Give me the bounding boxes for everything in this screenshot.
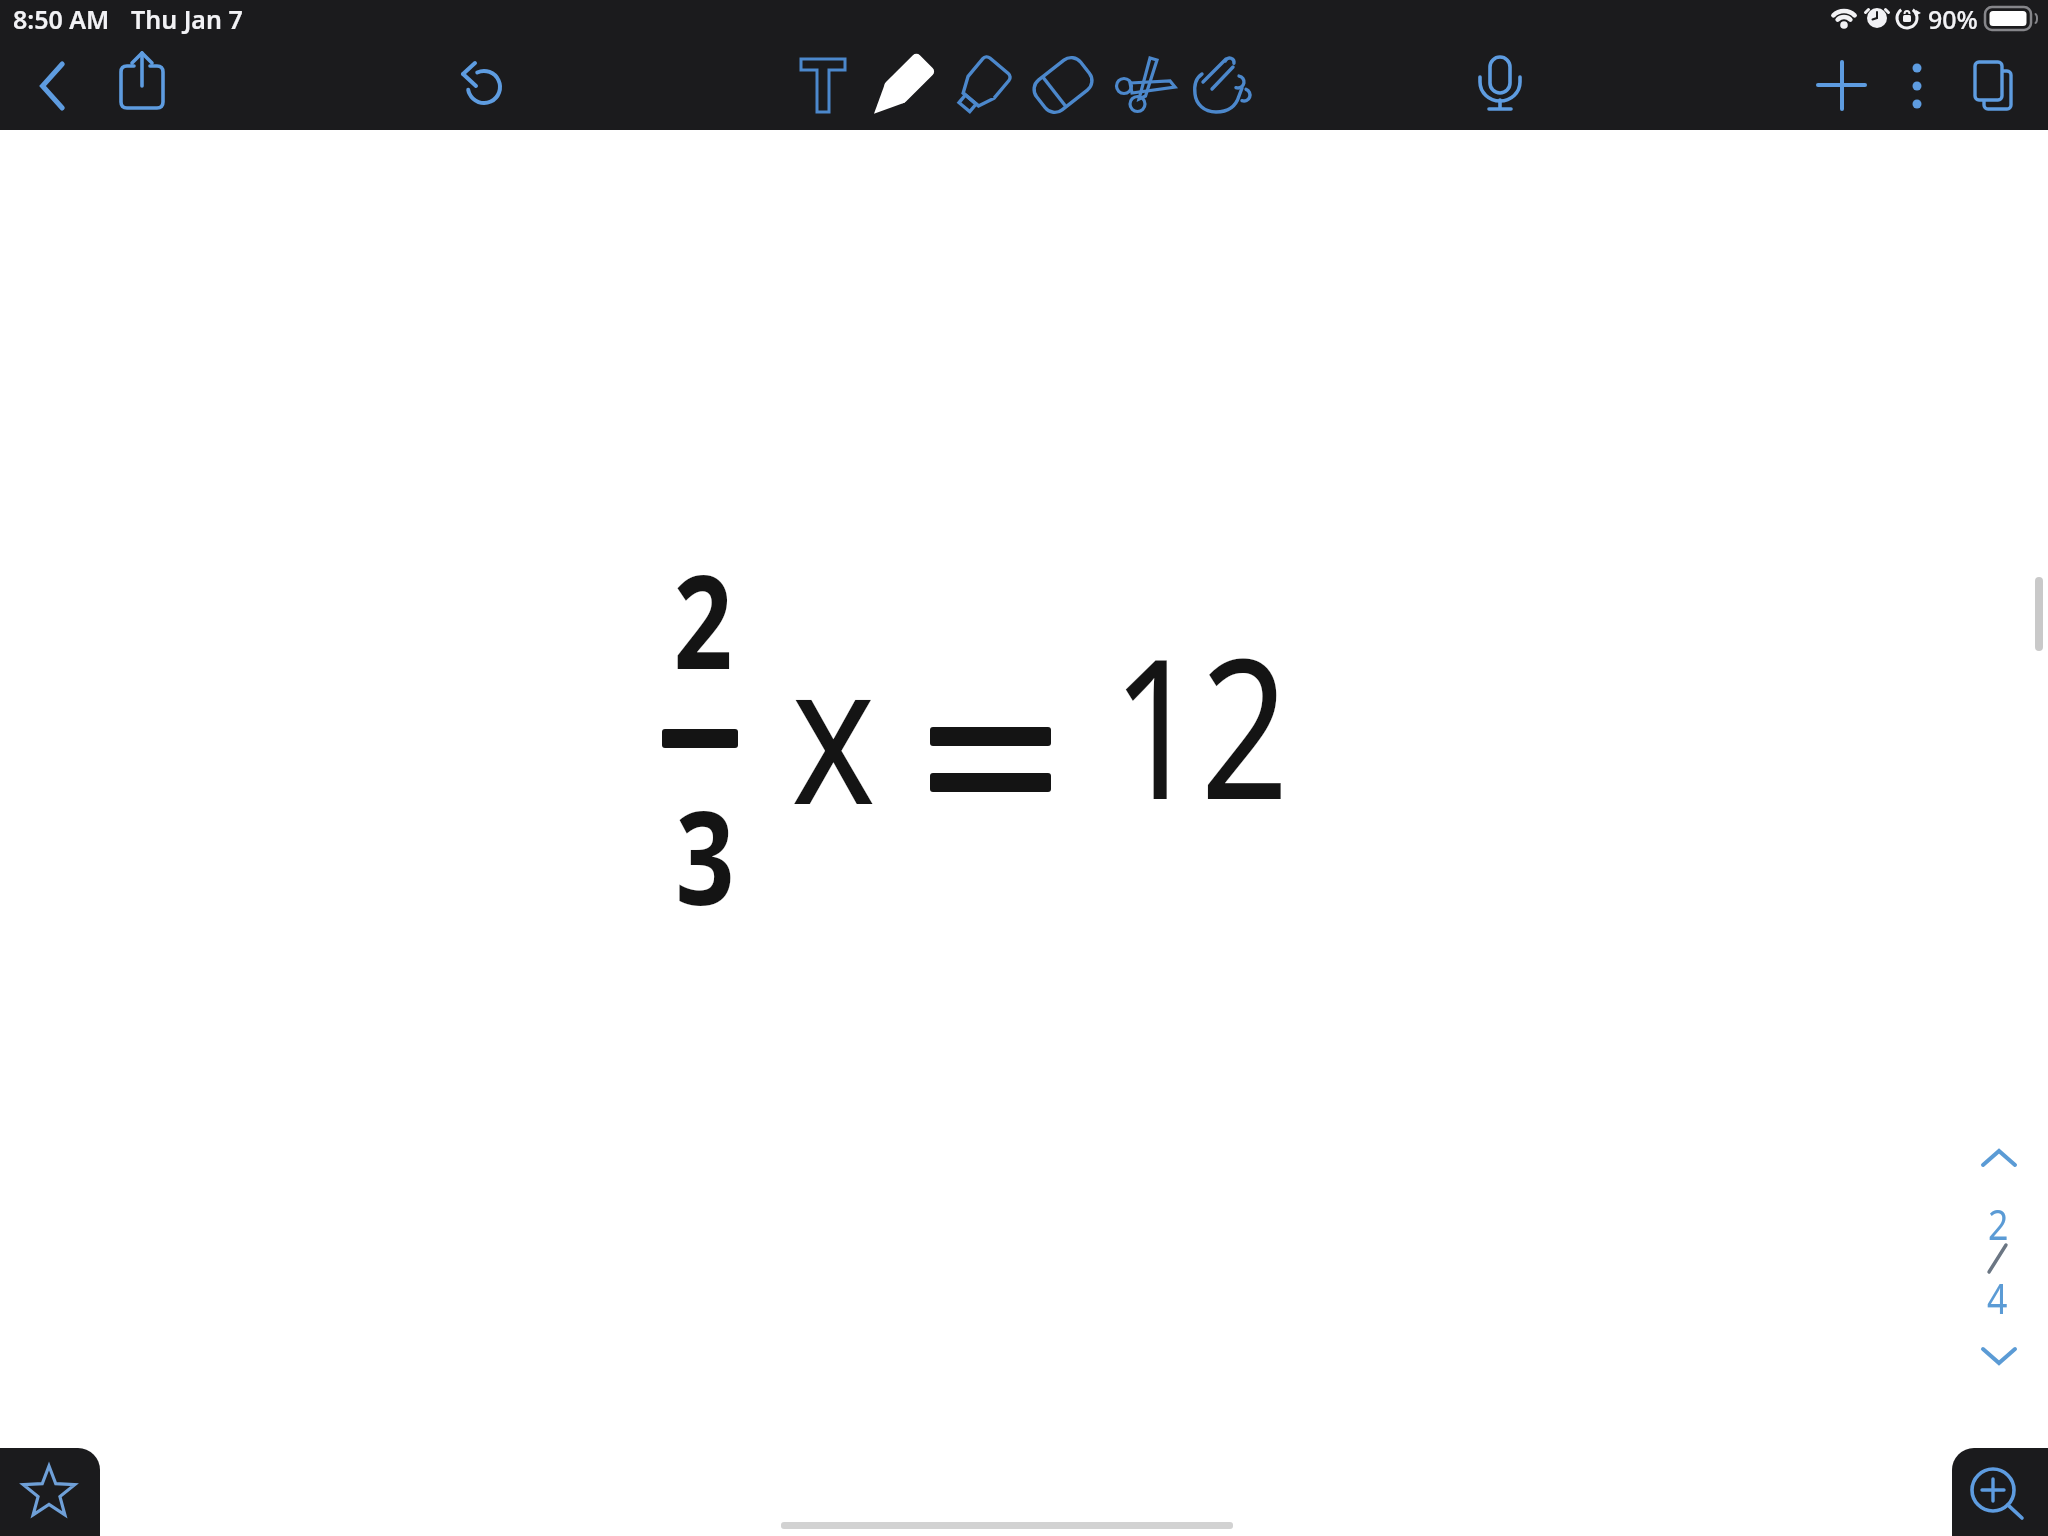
button[interactable] [1028,52,1098,118]
button[interactable] [1975,1335,2023,1379]
staticText: 90% [1928,2,1978,36]
button[interactable] [32,58,74,114]
staticText: 3 [675,767,735,943]
button[interactable] [942,55,1012,123]
staticText: 4 [1987,1269,2008,1326]
button[interactable] [118,50,166,112]
button[interactable] [799,57,849,114]
staticText: Thu Jan 7 [131,2,243,36]
button[interactable] [1952,1448,2048,1536]
button[interactable] [1900,58,1934,114]
button[interactable] [864,55,932,119]
button[interactable] [460,60,506,112]
staticText: 2 [673,531,733,707]
button[interactable] [1818,60,1866,110]
button[interactable] [1190,52,1260,118]
staticText: 12 [1112,593,1289,856]
staticText: x [791,597,876,861]
button[interactable] [0,1448,100,1536]
button[interactable] [1975,1135,2023,1179]
staticText: 2 [1988,1195,2009,1252]
staticText: 8:50 AM [13,2,110,36]
button[interactable] [1478,55,1522,115]
button[interactable] [1972,58,2016,114]
button[interactable] [1110,55,1178,117]
